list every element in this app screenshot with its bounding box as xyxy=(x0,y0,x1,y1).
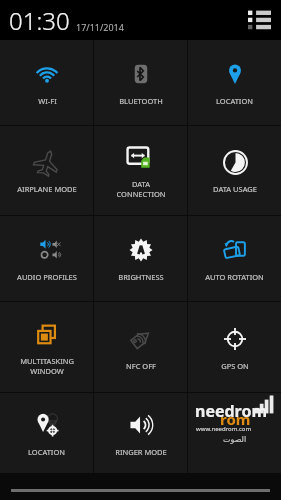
staticText: AUTO ROTATION xyxy=(205,272,264,282)
staticText: AIRPLANE MODE xyxy=(17,184,77,194)
staticText: NFC OFF xyxy=(126,361,156,371)
button[interactable]: RINGER MODE xyxy=(94,393,187,473)
button[interactable]: GPS ON xyxy=(188,302,281,392)
staticText: BLUETOOTH xyxy=(119,96,163,106)
button[interactable]: BRIGHTNESS xyxy=(94,216,187,301)
staticText: BRIGHTNESS xyxy=(118,272,164,282)
button[interactable]: AIRPLANE MODE xyxy=(0,126,93,215)
staticText: www.needrom.com xyxy=(196,425,252,433)
staticText: GPS ON xyxy=(221,361,249,371)
button[interactable]: DATA CONNECTION xyxy=(94,126,187,215)
button[interactable]: LOCATION xyxy=(188,40,281,125)
button[interactable]: AUDIO PROFILES xyxy=(0,216,93,301)
staticText: 17/11/2014 xyxy=(76,21,124,33)
button[interactable]: AUTO ROTATION xyxy=(188,216,281,301)
staticText: rom xyxy=(220,409,251,429)
button[interactable]: BLUETOOTH xyxy=(94,40,187,125)
staticText: 01:30 xyxy=(9,4,70,37)
button[interactable]: LOCATION xyxy=(0,393,93,473)
button[interactable]: الصوت xyxy=(188,393,281,473)
staticText: needrom xyxy=(195,400,268,422)
staticText: DATA CONNECTION xyxy=(116,179,166,199)
staticText: LOCATION xyxy=(28,447,65,457)
staticText: LOCATION xyxy=(216,96,253,106)
button[interactable]: MULTITASKING WINDOW xyxy=(0,302,93,392)
button[interactable]: Quick settings list xyxy=(245,6,273,34)
button[interactable]: NFC OFF xyxy=(94,302,187,392)
button[interactable]: DATA USAGE xyxy=(188,126,281,215)
staticText: AUDIO PROFILES xyxy=(17,272,77,282)
staticText: MULTITASKING WINDOW xyxy=(20,356,74,376)
staticText: DATA USAGE xyxy=(213,184,257,194)
staticText: الصوت xyxy=(223,435,247,444)
button[interactable]: WI-FI xyxy=(0,40,93,125)
staticText: RINGER MODE xyxy=(115,447,167,457)
staticText: WI-FI xyxy=(38,96,57,106)
